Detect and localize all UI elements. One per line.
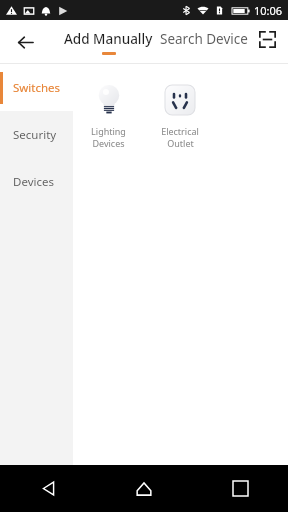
button[interactable]: Search Device xyxy=(160,30,248,48)
staticText: Devices xyxy=(13,174,54,190)
staticText: Outlet xyxy=(167,137,194,149)
button[interactable]: Home xyxy=(96,465,192,512)
button[interactable]: Security xyxy=(0,111,73,158)
button[interactable]: Lighting xyxy=(73,78,144,151)
button[interactable]: Devices xyxy=(0,158,73,205)
staticText: 10:06 xyxy=(254,3,283,18)
button[interactable]: Electrical xyxy=(144,78,216,151)
button[interactable]: Add Manually xyxy=(64,30,153,55)
staticText: Add Manually xyxy=(64,30,153,48)
staticText: Electrical xyxy=(161,125,199,137)
staticText: Lighting xyxy=(91,125,126,137)
button[interactable]: Recent apps xyxy=(192,465,288,512)
staticText: Devices xyxy=(92,137,125,149)
staticText: Search Device xyxy=(160,30,248,48)
button[interactable]: Back xyxy=(0,465,96,512)
button[interactable]: Back xyxy=(8,25,42,59)
button[interactable]: Scan xyxy=(254,26,280,52)
staticText: Switches xyxy=(13,80,61,96)
button[interactable]: Switches xyxy=(0,64,73,111)
staticText: Security xyxy=(13,127,57,143)
